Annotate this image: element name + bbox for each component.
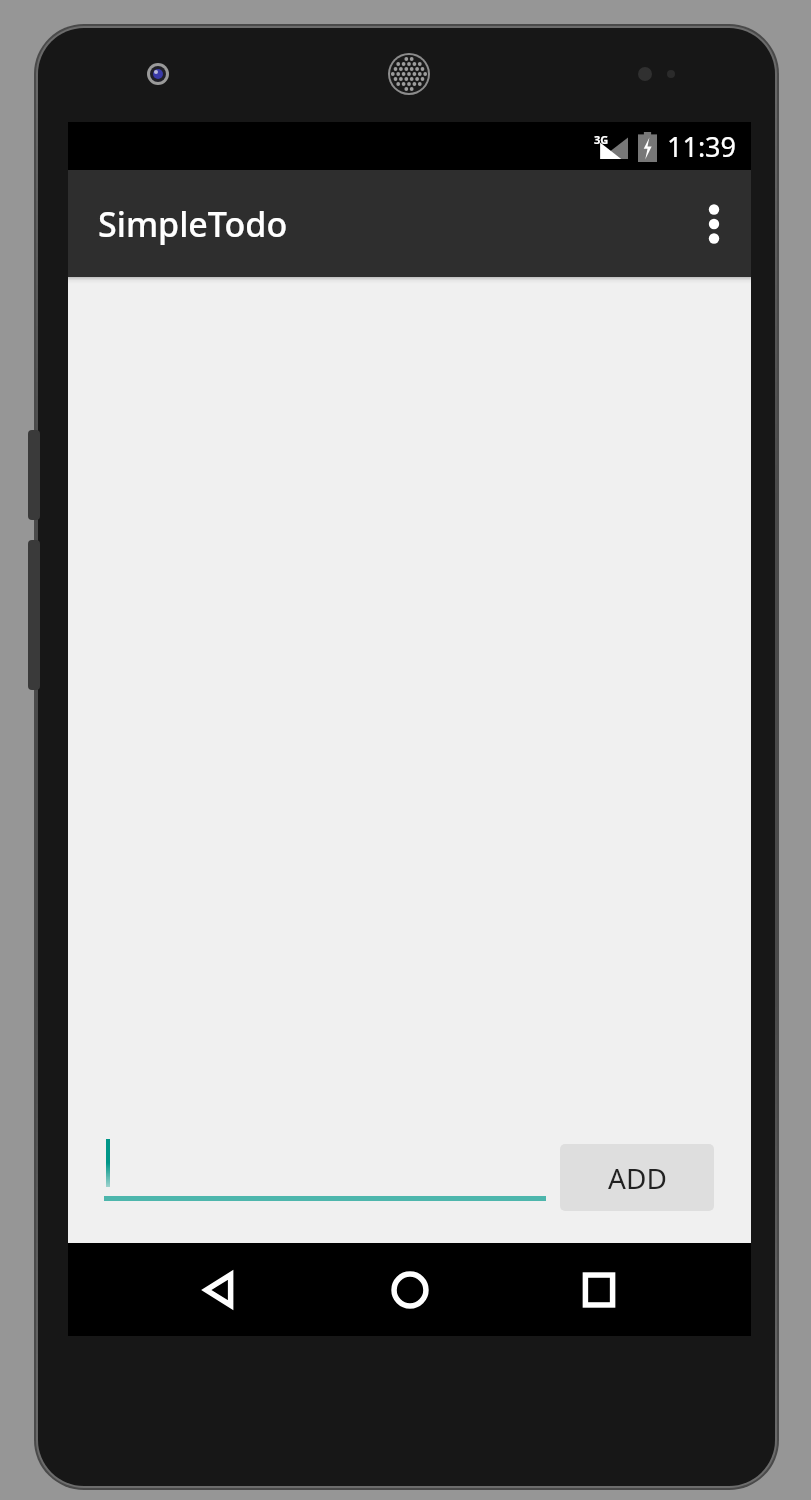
button[interactable]: Home bbox=[372, 1252, 448, 1328]
button[interactable]: ADD bbox=[560, 1144, 714, 1211]
staticText: ADD bbox=[608, 1159, 667, 1197]
button[interactable]: Task input field bbox=[104, 1128, 546, 1216]
button[interactable]: Recent apps bbox=[561, 1252, 637, 1328]
button[interactable]: More options bbox=[677, 170, 751, 277]
staticText: 3G bbox=[594, 132, 609, 147]
button[interactable]: Back bbox=[182, 1252, 258, 1328]
staticText: SimpleTodo bbox=[98, 201, 288, 247]
staticText: 11:39 bbox=[667, 128, 737, 165]
